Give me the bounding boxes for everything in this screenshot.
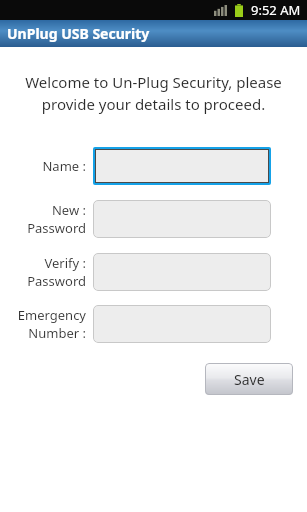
staticText: Welcome to Un-Plug Security, please prov… [10, 72, 297, 115]
staticText: Password [27, 219, 86, 237]
staticText: UnPlug USB Security [7, 24, 150, 43]
staticText: 9:52 AM [251, 1, 301, 19]
button[interactable] [93, 253, 271, 291]
button[interactable] [95, 149, 269, 183]
staticText: Verify : [44, 254, 86, 272]
staticText: Emergency [17, 306, 86, 324]
staticText: Number : [28, 324, 86, 342]
staticText: Password [27, 272, 86, 290]
other: Signal strength [214, 5, 227, 16]
staticText: Name : [42, 157, 86, 175]
button[interactable] [93, 305, 271, 343]
button[interactable] [93, 200, 271, 238]
staticText: New : [51, 201, 86, 219]
button[interactable]: Save [205, 363, 293, 395]
staticText: Save [234, 370, 265, 389]
other: Battery [235, 4, 243, 17]
